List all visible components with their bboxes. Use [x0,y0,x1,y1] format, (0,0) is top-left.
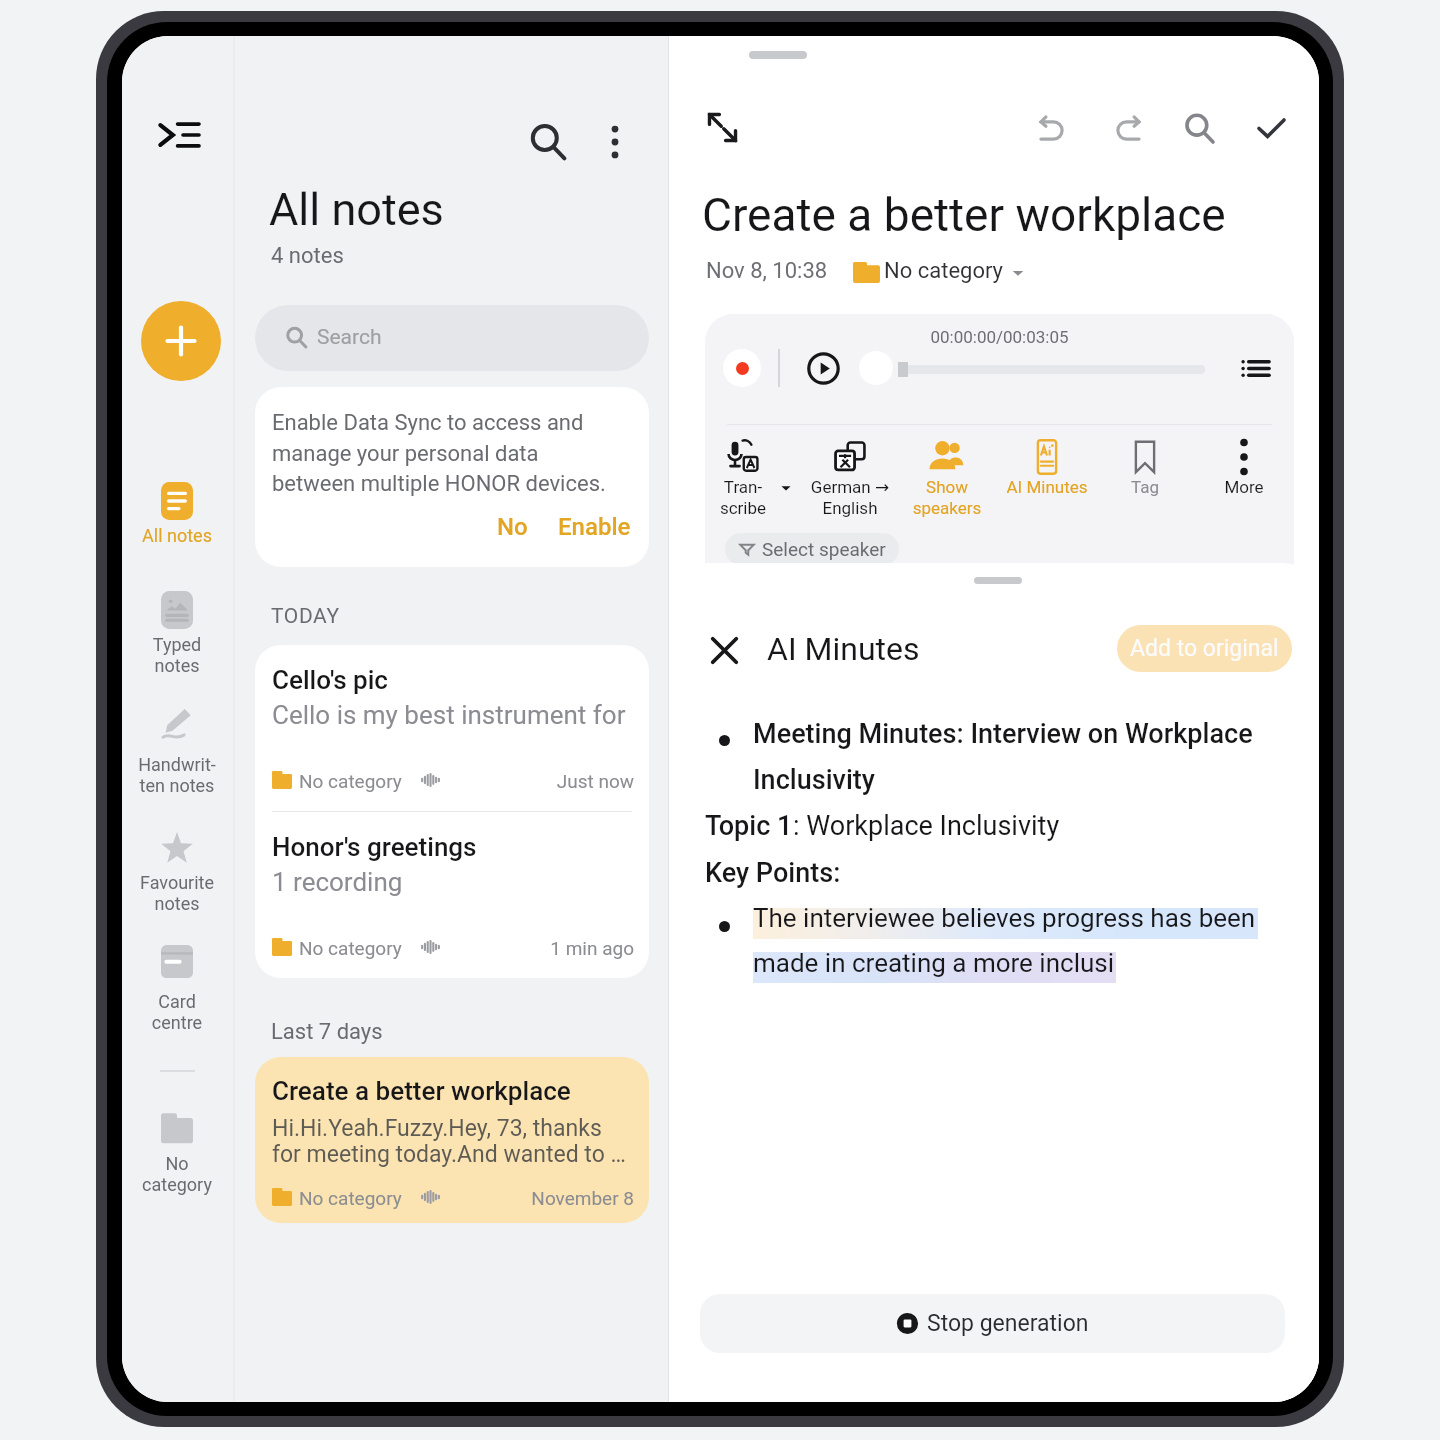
staticText: More [1194,477,1294,497]
staticText: Select speaker [762,538,886,560]
staticText: 1 recording [272,867,403,897]
button[interactable]: Add to original [1117,625,1292,672]
staticText: No category [299,937,402,959]
button[interactable]: Tag [1095,436,1195,516]
staticText: Stop generation [927,1310,1089,1337]
staticText: : Workplace Inclusivity [793,810,1060,842]
staticText: Last 7 days [271,1019,383,1045]
button[interactable]: Favourite notes [127,830,227,922]
button[interactable]: Cello's pic [255,645,649,811]
staticText: Just now [272,770,634,792]
staticText: The interviewee believes progress has be… [753,903,1278,978]
staticText: Topic 1 [705,810,793,842]
staticText: All notes [127,525,227,546]
staticText: No [497,513,528,541]
staticText: Honor's greetings [272,832,477,862]
staticText: No category [884,258,1004,284]
staticText: Key Points: [705,857,841,889]
button[interactable]: Create a better workplace [255,1057,649,1223]
staticText: German → English [800,477,900,519]
staticText: All notes [269,183,444,236]
button[interactable]: More options [585,112,645,172]
button[interactable]: AI Minutes [997,436,1097,516]
staticText: Favourite notes [127,872,227,914]
staticText: 00:00:00/00:03:05 [705,327,1294,347]
staticText: Create a better workplace [272,1076,571,1106]
button[interactable]: No category [127,1108,227,1203]
staticText: Nov 8, 10:38 [706,258,828,284]
staticText: November 8 [272,1187,634,1209]
button[interactable]: No [485,507,540,547]
button[interactable]: Enable [554,507,635,547]
staticText: No category [299,1187,402,1209]
staticText: Tag [1095,477,1195,497]
staticText: TODAY [271,604,340,629]
button[interactable]: Enable Data Sync to access and manage yo… [255,387,649,567]
button[interactable]: Typed notes [127,591,227,684]
button[interactable]: Undo [1023,98,1083,158]
staticText: Search [317,325,382,350]
button[interactable]: Select speaker [725,533,899,565]
staticText: Handwrit- ten notes [127,754,227,796]
staticText: Card centre [127,991,227,1033]
button[interactable]: More [1194,436,1294,516]
button[interactable]: All notes [127,482,227,575]
button[interactable]: Search [255,305,649,371]
staticText: Create a better workplace [702,188,1226,242]
staticText: Enable Data Sync to access and manage yo… [272,410,620,496]
staticText: Hi.Hi.Yeah.Fuzzy.Hey, 73, thanks for mee… [272,1115,634,1167]
staticText: No category [299,770,402,792]
button[interactable]: Search in note [1169,98,1229,158]
staticText: Show speakers [897,477,997,519]
staticText: Meeting Minutes: Interview on Workplace … [753,718,1278,796]
staticText: Typed notes [127,634,227,676]
staticText: Cello is my best instrument for [272,700,626,730]
staticText: AI Minutes [997,477,1097,497]
button[interactable]: Expand editor [692,97,752,157]
button[interactable]: Done [1241,98,1301,158]
staticText: AI Minutes [767,630,920,668]
button[interactable]: Create note [141,301,221,381]
staticText: Tran- scribe [705,477,793,519]
button[interactable]: Show speakers [897,436,997,516]
staticText: 1 min ago [272,937,634,959]
button[interactable]: Tran- scribe [705,436,793,516]
button[interactable]: Card centre [127,942,227,1041]
staticText: No category [127,1153,227,1195]
button[interactable]: Handwrit- ten notes [127,703,227,804]
button[interactable]: Stop generation [700,1294,1285,1353]
button[interactable]: Redo [1096,98,1156,158]
button[interactable]: Honor's greetings [255,812,649,978]
button[interactable]: Show menu [149,105,209,165]
staticText: Enable [558,513,631,541]
button[interactable]: Search notes [518,112,578,172]
button[interactable]: Record [723,349,761,387]
staticText: 4 notes [271,243,344,269]
button[interactable]: German → English [800,436,900,516]
staticText: Add to original [1130,635,1279,662]
staticText: Cello's pic [272,665,388,695]
button[interactable]: Close AI Minutes [698,624,750,676]
button[interactable]: Recording list [1235,348,1275,388]
button[interactable]: Play [803,348,843,388]
